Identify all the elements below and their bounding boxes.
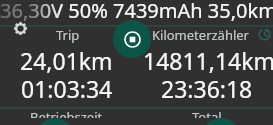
staticText: 23:36:18 [161,73,253,104]
staticText: Total [192,108,222,118]
staticText: Kilometerzähler [152,26,249,44]
staticText: 24,01km [20,45,113,76]
staticText: 01:03:34 [21,73,113,104]
button[interactable]: Settings [12,20,28,36]
button[interactable]: Reset total [202,118,240,125]
staticText: Betriebszeit [30,108,103,118]
button[interactable]: History [256,26,272,42]
staticText: 14811,14km [143,45,273,76]
staticText: Trip [56,26,80,44]
staticText: 36,30V 50% 7439mAh 35,0km [0,0,273,24]
button[interactable]: Stop recording [113,20,151,58]
button[interactable]: Reset trip [36,118,74,125]
